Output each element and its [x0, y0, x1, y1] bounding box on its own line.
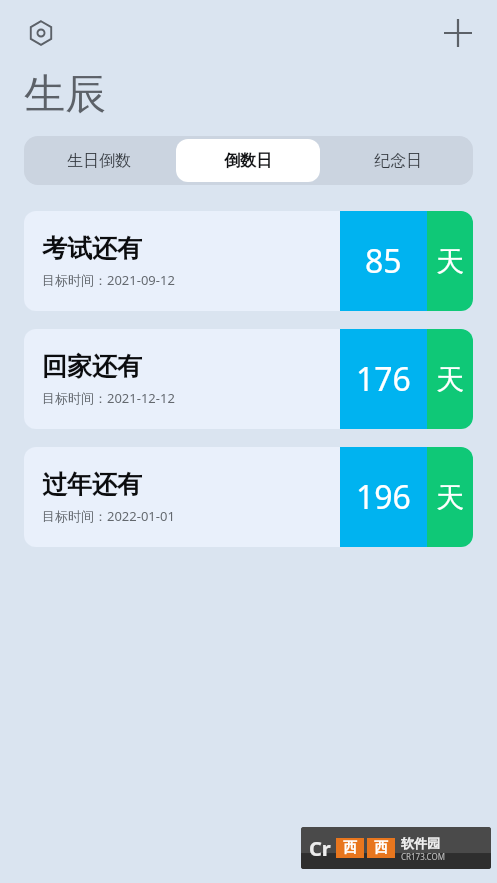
staticText: 生日倒数 — [67, 151, 131, 171]
staticText: 纪念日 — [374, 151, 422, 171]
staticText: 西 — [343, 839, 357, 857]
button[interactable]: Add — [435, 10, 481, 56]
staticText: 天 — [436, 244, 464, 279]
staticText: 目标时间：2021-12-12 — [42, 389, 175, 407]
staticText: 回家还有 — [42, 351, 142, 382]
button[interactable]: 纪念日 — [326, 139, 470, 182]
staticText: 目标时间：2022-01-01 — [42, 507, 175, 525]
button[interactable]: 回家还有 — [24, 329, 473, 429]
staticText: 生辰 — [24, 69, 106, 121]
staticText: 196 — [356, 475, 411, 519]
staticText: 176 — [356, 357, 411, 401]
staticText: 天 — [436, 480, 464, 515]
staticText: 85 — [365, 239, 402, 283]
staticText: 倒数日 — [224, 151, 272, 171]
button[interactable]: 考试还有 — [24, 211, 473, 311]
staticText: 天 — [436, 362, 464, 397]
staticText: 目标时间：2021-09-12 — [42, 271, 175, 289]
button[interactable]: 过年还有 — [24, 447, 473, 547]
button[interactable]: 倒数日 — [176, 139, 320, 182]
staticText: CR173.COM — [401, 851, 445, 862]
button[interactable]: 生日倒数 — [27, 139, 170, 182]
staticText: Cr — [309, 835, 331, 862]
staticText: 考试还有 — [42, 233, 142, 264]
button[interactable]: Settings — [18, 10, 64, 56]
staticText: 软件园 — [401, 835, 440, 851]
staticText: 过年还有 — [42, 469, 142, 500]
staticText: 西 — [374, 839, 388, 857]
